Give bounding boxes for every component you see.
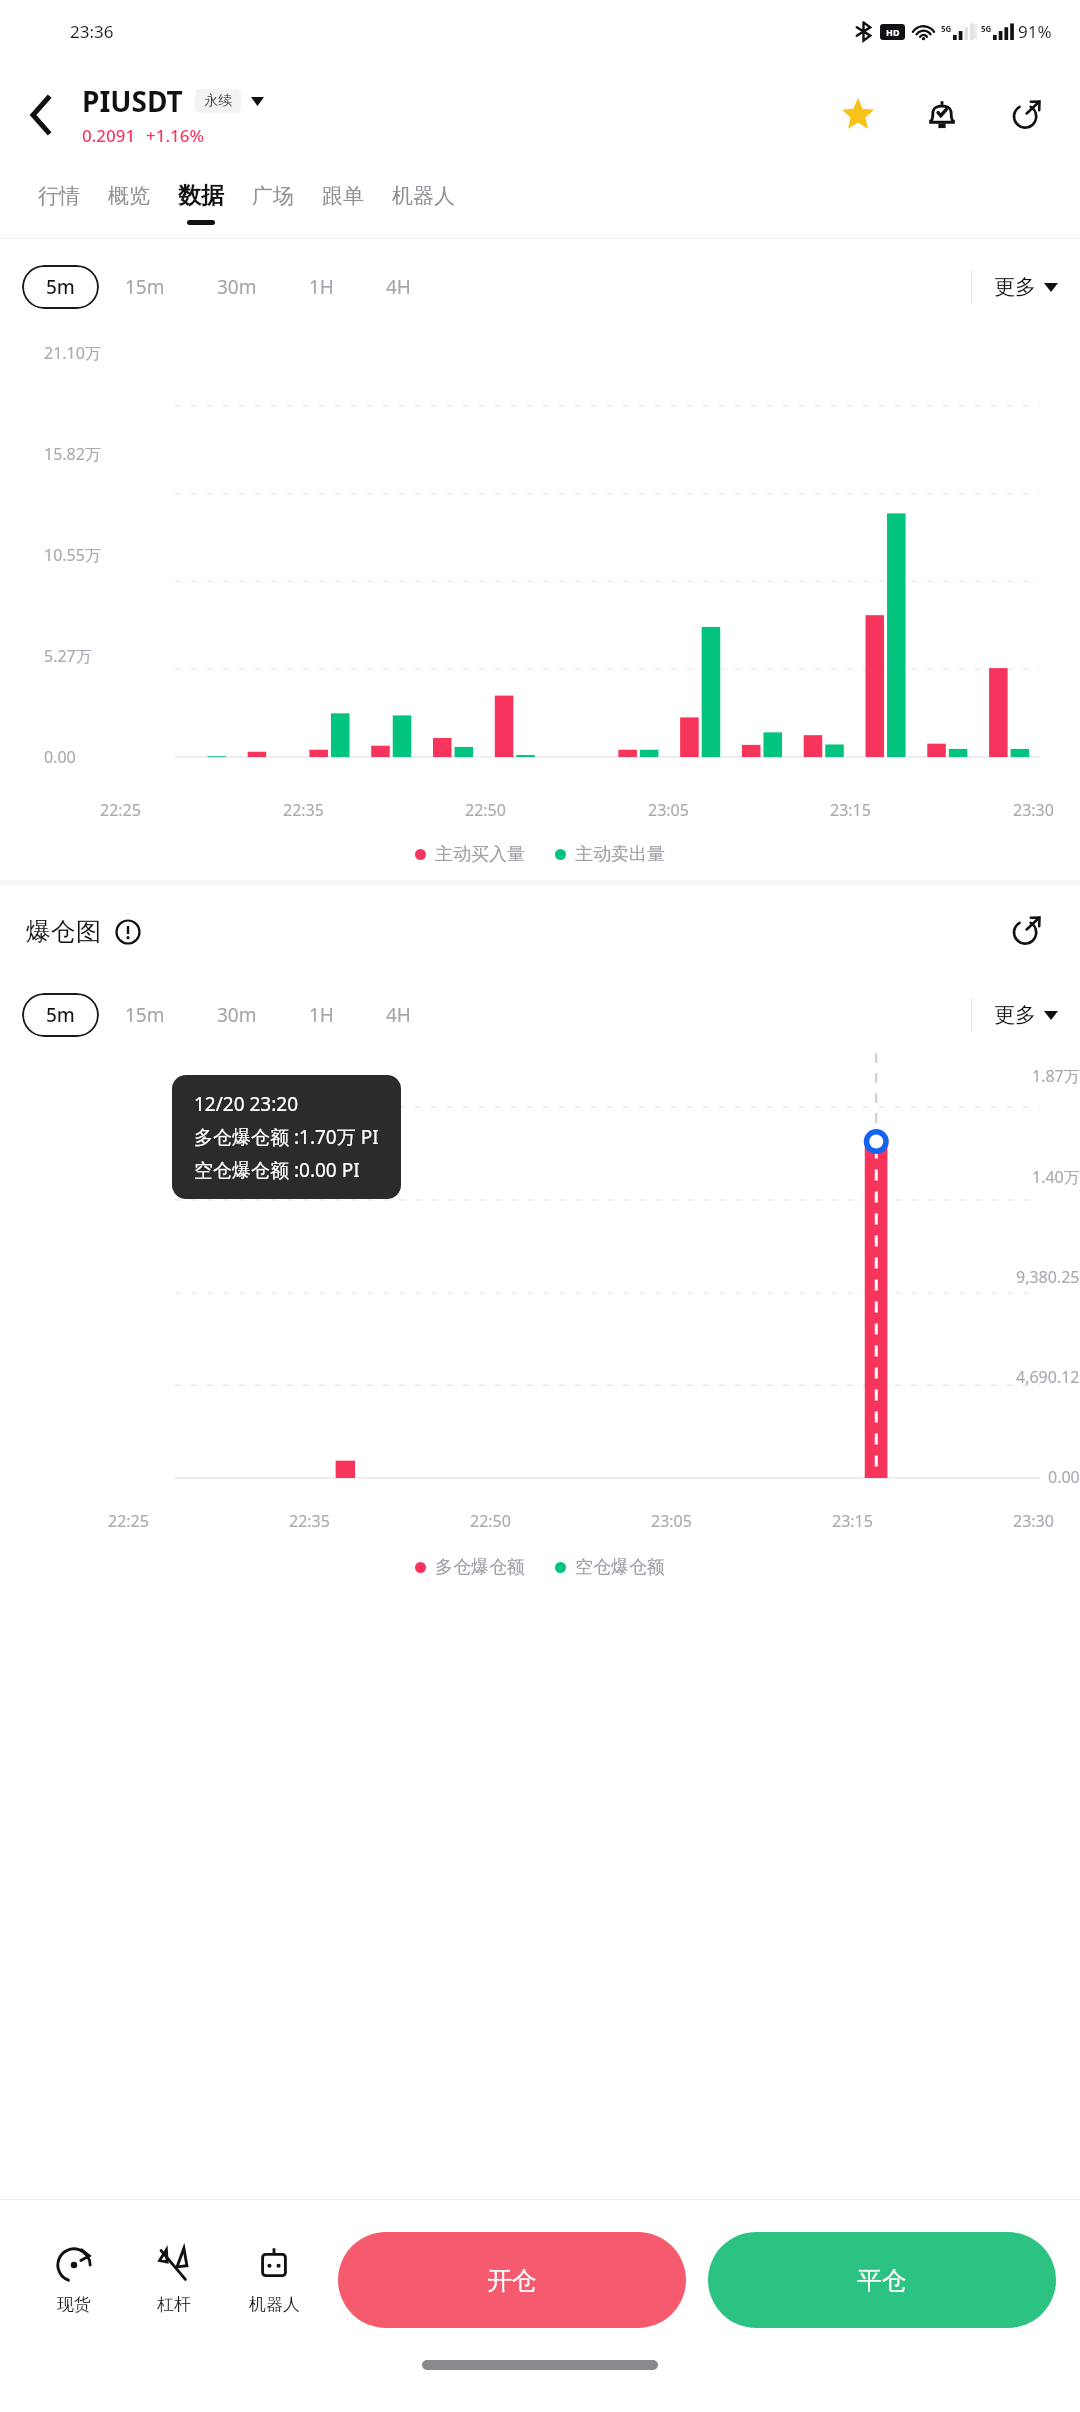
button[interactable]: 机器人 — [378, 183, 469, 224]
button[interactable]: Share — [998, 87, 1054, 143]
staticText: 5G — [941, 23, 952, 34]
staticText: 22:35 — [289, 1510, 330, 1532]
staticText: 5m — [46, 1002, 75, 1028]
staticText: 0.2091 — [82, 124, 136, 147]
staticText: 机器人 — [392, 183, 455, 209]
button[interactable]: 概览 — [94, 183, 164, 224]
button[interactable]: 开仓 — [338, 2232, 686, 2328]
staticText: 12/20 23:20 — [194, 1091, 299, 1117]
staticText: 0.00 — [1048, 1466, 1080, 1488]
staticText: 23:05 — [648, 799, 689, 821]
staticText: 21.10万 — [44, 342, 101, 364]
button[interactable]: 1H — [283, 991, 360, 1039]
staticText: 23:15 — [830, 799, 871, 821]
staticText: 更多 — [994, 1002, 1036, 1028]
staticText: 1.87万 — [1032, 1065, 1080, 1087]
staticText: +1.16% — [146, 124, 205, 147]
button[interactable]: 更多 — [994, 994, 1058, 1036]
staticText: 空仓爆仓额 :0.00 PI — [194, 1157, 360, 1183]
button[interactable]: Share chart — [998, 903, 1054, 959]
button[interactable]: 平仓 — [708, 2232, 1056, 2328]
button[interactable]: 行情 — [24, 183, 94, 224]
staticText: 23:15 — [832, 1510, 873, 1532]
staticText: 22:50 — [465, 799, 506, 821]
staticText: 4H — [386, 1002, 411, 1028]
staticText: 23:30 — [1013, 1510, 1054, 1532]
button[interactable]: 跟单 — [308, 183, 378, 224]
button[interactable]: 30m — [191, 263, 283, 311]
staticText: 1H — [309, 274, 334, 300]
staticText: 1.40万 — [1032, 1166, 1080, 1188]
button[interactable]: 5m — [22, 265, 99, 309]
button[interactable]: 杠杆 — [124, 2240, 224, 2321]
staticText: 5G — [981, 23, 992, 34]
staticText: 1H — [309, 1002, 334, 1028]
staticText: 23:36 — [70, 20, 114, 43]
staticText: 行情 — [38, 183, 80, 209]
staticText: 概览 — [108, 183, 150, 209]
staticText: 主动买入量 — [435, 843, 525, 866]
staticText: 爆仓图 — [26, 916, 101, 947]
staticText: 91% — [1018, 20, 1052, 43]
staticText: 现货 — [57, 2294, 91, 2315]
staticText: 22:50 — [470, 1510, 511, 1532]
button[interactable]: 永续 — [195, 89, 241, 113]
staticText: 22:25 — [108, 1510, 149, 1532]
staticText: 机器人 — [249, 2294, 300, 2315]
button[interactable]: 现货 — [24, 2240, 124, 2321]
button[interactable]: 1H — [283, 263, 360, 311]
button[interactable]: 爆仓图 — [26, 916, 141, 947]
staticText: 22:25 — [100, 799, 141, 821]
staticText: 5.27万 — [44, 645, 92, 667]
staticText: 空仓爆仓额 — [575, 1556, 665, 1579]
staticText: 更多 — [994, 274, 1036, 300]
staticText: 多仓爆仓额 :1.70万 PI — [194, 1124, 379, 1150]
button[interactable]: 4H — [360, 991, 437, 1039]
staticText: 数据 — [178, 181, 224, 210]
staticText: 9,380.25 — [1016, 1266, 1080, 1288]
button[interactable]: 更多 — [994, 266, 1058, 308]
staticText: 4H — [386, 274, 411, 300]
staticText: PIUSDT — [82, 82, 183, 120]
staticText: 平仓 — [857, 2265, 907, 2296]
button[interactable]: Back — [10, 84, 72, 146]
staticText: 永续 — [204, 92, 232, 110]
staticText: 主动卖出量 — [575, 843, 665, 866]
staticText: 5m — [46, 274, 75, 300]
staticText: 多仓爆仓额 — [435, 1556, 525, 1579]
button[interactable]: 15m — [99, 263, 191, 311]
staticText: 30m — [217, 1002, 257, 1028]
staticText: 22:35 — [283, 799, 324, 821]
staticText: 4,690.12 — [1016, 1366, 1080, 1388]
staticText: 广场 — [252, 183, 294, 209]
button[interactable]: 广场 — [238, 183, 308, 224]
button[interactable]: 15m — [99, 991, 191, 1039]
staticText: 10.55万 — [44, 544, 101, 566]
staticText: 跟单 — [322, 183, 364, 209]
button[interactable]: Alerts — [914, 87, 970, 143]
button[interactable]: 4H — [360, 263, 437, 311]
staticText: 杠杆 — [157, 2294, 191, 2315]
button[interactable]: Favorite — [830, 87, 886, 143]
staticText: 23:30 — [1013, 799, 1054, 821]
button[interactable]: 机器人 — [224, 2240, 324, 2321]
staticText: 0.00 — [44, 746, 76, 768]
button[interactable]: 30m — [191, 991, 283, 1039]
staticText: 23:05 — [651, 1510, 692, 1532]
staticText: 30m — [217, 274, 257, 300]
staticText: 15m — [125, 1002, 165, 1028]
button[interactable]: 数据 — [164, 181, 238, 225]
button[interactable]: 5m — [22, 993, 99, 1037]
staticText: HD — [886, 26, 900, 38]
staticText: 15m — [125, 274, 165, 300]
staticText: 15.82万 — [44, 443, 101, 465]
staticText: 开仓 — [487, 2265, 537, 2296]
